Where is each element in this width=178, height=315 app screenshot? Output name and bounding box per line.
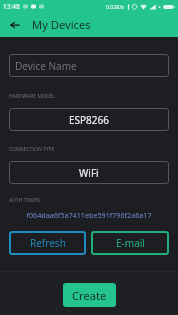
staticText: CONNECTION TYPE [9, 146, 55, 153]
staticText: WiFi [79, 166, 99, 180]
staticText: AUTH TOKEN [9, 197, 40, 204]
staticText: HARDWARE MODEL [9, 93, 55, 100]
button[interactable]: Back [0, 12, 30, 37]
staticText: Refresh [30, 236, 66, 250]
button[interactable]: E-mail [91, 231, 169, 255]
button[interactable]: Create [63, 283, 116, 307]
button[interactable]: ESP8266 [9, 108, 169, 131]
staticText: E-mail [116, 236, 145, 250]
staticText: 0.02K/s [106, 3, 124, 10]
staticText: Create [72, 288, 107, 303]
button[interactable]: Device Name [9, 54, 169, 77]
staticText: 13:48 [3, 2, 20, 11]
staticText: Device Name [15, 59, 77, 73]
staticText: My Devices [32, 17, 91, 32]
staticText: ESP8266 [69, 113, 109, 127]
button[interactable]: Refresh [9, 231, 86, 255]
staticText: f064daa6f5a7411ebe591f796f2a6a17 [9, 210, 169, 220]
button[interactable]: WiFi [9, 161, 169, 184]
